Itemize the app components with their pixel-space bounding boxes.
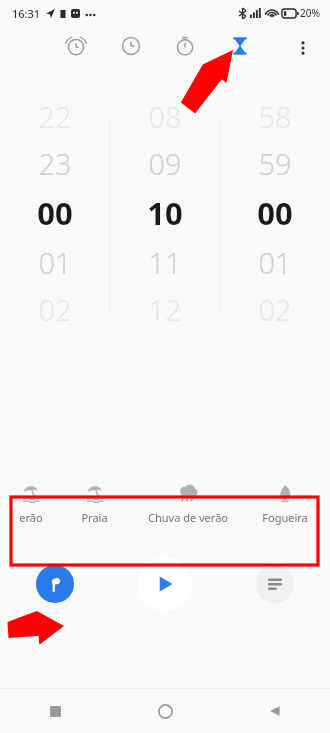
button[interactable]: Home xyxy=(145,691,185,731)
staticText: 16:31 xyxy=(12,6,41,21)
button[interactable]: Fogueira xyxy=(244,472,326,534)
staticText: 59 xyxy=(258,144,292,183)
staticText: 23 xyxy=(38,144,72,183)
button[interactable]: Presets xyxy=(256,565,294,603)
button[interactable]: Start xyxy=(138,557,192,611)
staticText: 02 xyxy=(38,290,72,329)
staticText: 11 xyxy=(148,243,182,282)
button[interactable]: Sound xyxy=(36,565,74,603)
staticText: Fogueira xyxy=(262,510,308,525)
button[interactable]: Back xyxy=(255,691,295,731)
staticText: 10 xyxy=(147,192,183,234)
staticText: 08 xyxy=(148,97,182,136)
staticText: Praia xyxy=(81,510,108,525)
button[interactable]: Timer xyxy=(220,26,260,66)
staticText: 58 xyxy=(258,97,292,136)
staticText: erão xyxy=(19,510,43,525)
staticText: 01 xyxy=(38,243,72,282)
staticText: 00 xyxy=(37,192,73,234)
staticText: 00 xyxy=(257,192,293,234)
button[interactable]: Clock xyxy=(111,26,151,66)
button[interactable]: More options xyxy=(288,33,318,63)
staticText: 01 xyxy=(258,243,292,282)
staticText: 12 xyxy=(148,290,182,329)
staticText: 09 xyxy=(148,144,182,183)
button[interactable]: Minutes xyxy=(110,88,220,338)
button[interactable]: Hours xyxy=(0,88,110,338)
staticText: 20% xyxy=(300,6,320,20)
button[interactable]: Alarm xyxy=(56,26,96,66)
staticText: Chuva de verão xyxy=(148,510,228,525)
button[interactable]: Stopwatch xyxy=(165,26,205,66)
button[interactable]: Chuva de verão xyxy=(132,472,244,534)
button[interactable]: erão xyxy=(4,472,57,534)
button[interactable]: Praia xyxy=(57,472,132,534)
button[interactable]: Recents xyxy=(35,691,75,731)
button[interactable]: Seconds xyxy=(220,88,330,338)
staticText: 22 xyxy=(38,97,72,136)
staticText: 02 xyxy=(258,290,292,329)
